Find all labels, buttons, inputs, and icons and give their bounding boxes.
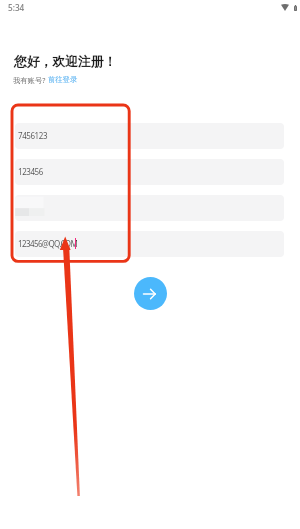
button[interactable]: 123456@QQ.COM — [15, 231, 284, 257]
staticText: 我有账号? — [13, 75, 48, 85]
button[interactable]: 123456 — [15, 159, 284, 185]
staticText: 您好，欢迎注册！ — [14, 54, 117, 70]
staticText: 123456 — [18, 166, 43, 177]
staticText: 5:34 — [8, 2, 25, 13]
staticText: 7456123 — [18, 130, 48, 141]
staticText: 123456@QQ.COM — [18, 238, 78, 249]
button[interactable]: 前往登录 — [48, 75, 78, 84]
button[interactable]: Next — [134, 277, 167, 310]
button[interactable] — [15, 195, 284, 221]
button[interactable]: 7456123 — [15, 123, 284, 149]
